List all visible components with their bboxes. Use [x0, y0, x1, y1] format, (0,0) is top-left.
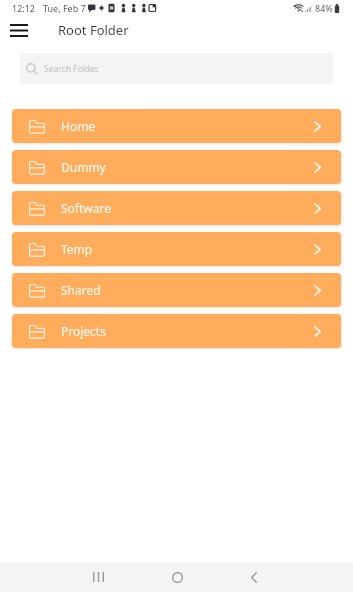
staticText: Temp: [61, 241, 93, 257]
staticText: Projects: [61, 323, 106, 339]
staticText: Dummy: [61, 159, 106, 175]
staticText: Root Folder: [58, 21, 129, 39]
button[interactable]: Shared: [12, 273, 341, 307]
button[interactable]: Recent apps: [76, 562, 120, 592]
button[interactable]: Back: [232, 562, 276, 592]
button[interactable]: Home: [155, 562, 199, 592]
staticText: Software: [61, 200, 111, 216]
button[interactable]: Dummy: [12, 150, 341, 184]
staticText: 84%: [315, 2, 333, 14]
button[interactable]: Projects: [12, 314, 341, 348]
button[interactable]: Temp: [12, 232, 341, 266]
staticText: Shared: [61, 282, 101, 298]
button[interactable]: Software: [12, 191, 341, 225]
staticText: Home: [61, 118, 96, 134]
button[interactable]: Home: [12, 109, 341, 143]
button[interactable]: Open navigation menu: [4, 16, 34, 45]
button[interactable]: Search Folder.: [20, 53, 333, 84]
staticText: 12:12: [12, 2, 36, 14]
staticText: Tue, Feb 7: [43, 2, 86, 14]
staticText: Search Folder.: [44, 63, 100, 75]
